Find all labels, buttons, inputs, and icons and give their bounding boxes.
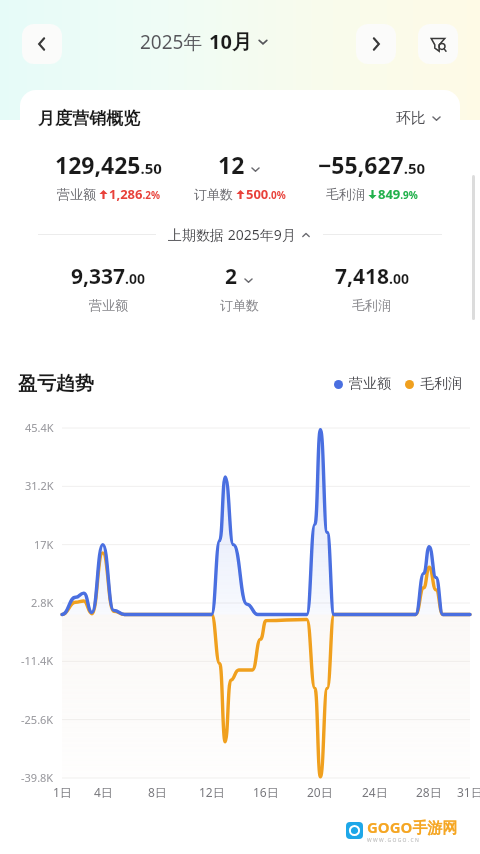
staticText: 9,337.00 — [71, 262, 145, 291]
button[interactable]: 7,418.00 — [297, 262, 446, 313]
staticText: 环比 — [396, 109, 426, 128]
staticText: −55,627.50 — [318, 149, 426, 180]
staticText: 849.9% — [378, 185, 418, 203]
staticText: 8日 — [148, 784, 167, 800]
button[interactable]: 上期数据 2025年9月 — [168, 225, 311, 244]
button[interactable]: 营业额 — [334, 375, 391, 393]
staticText: 10月 — [209, 28, 252, 55]
button[interactable]: Filter — [418, 24, 458, 64]
button[interactable]: 月度营销概览 — [20, 90, 460, 352]
staticText: 16日 — [253, 784, 279, 800]
staticText: 2 — [225, 262, 238, 291]
staticText: 31日 — [457, 784, 480, 800]
staticText: 24日 — [362, 784, 388, 800]
staticText: 1,286.2% — [109, 185, 160, 203]
staticText: 12 — [218, 149, 245, 180]
button[interactable]: Next month — [356, 24, 396, 64]
staticText: 45.4K — [25, 420, 54, 435]
staticText: 31.2K — [25, 478, 54, 493]
staticText: W W W . G O G O . C N — [367, 837, 419, 844]
button[interactable]: 2 — [182, 262, 297, 313]
button[interactable]: −55,627.50 — [297, 149, 446, 203]
button[interactable]: 2025年 — [140, 28, 269, 55]
staticText: 营业额 — [89, 297, 128, 313]
staticText: -39.8K — [21, 770, 54, 785]
staticText: -25.6K — [21, 712, 54, 727]
button[interactable]: 环比 — [396, 109, 442, 128]
staticText: 28日 — [416, 784, 442, 800]
staticText: 129,425.50 — [55, 149, 162, 180]
staticText: 1日 — [53, 784, 72, 800]
button[interactable]: 9,337.00 — [34, 262, 182, 313]
button[interactable]: 129,425.50 — [34, 149, 182, 203]
staticText: 毛利润 — [352, 297, 391, 313]
staticText: 营业额 — [349, 375, 391, 393]
staticText: GOGO手游网 — [367, 817, 458, 837]
staticText: 盈亏趋势 — [18, 372, 94, 396]
staticText: 2025年 — [140, 29, 203, 55]
staticText: 月度营销概览 — [38, 108, 140, 129]
staticText: 7,418.00 — [335, 262, 409, 291]
staticText: 2.8K — [31, 595, 54, 610]
staticText: 订单数 — [220, 297, 259, 313]
button[interactable]: 12 — [182, 149, 297, 203]
button[interactable]: 毛利润 — [405, 375, 462, 393]
staticText: 17K — [34, 537, 54, 552]
staticText: 12日 — [199, 784, 225, 800]
staticText: 4日 — [94, 784, 113, 800]
staticText: 500.0% — [246, 185, 286, 203]
staticText: 毛利润 — [326, 186, 365, 202]
staticText: 营业额 — [57, 186, 96, 202]
staticText: 上期数据 2025年9月 — [168, 225, 296, 244]
button[interactable]: Back — [22, 24, 62, 64]
staticText: 20日 — [307, 784, 333, 800]
staticText: 毛利润 — [420, 375, 462, 393]
staticText: 订单数 — [194, 186, 233, 202]
staticText: -11.4K — [21, 653, 54, 668]
